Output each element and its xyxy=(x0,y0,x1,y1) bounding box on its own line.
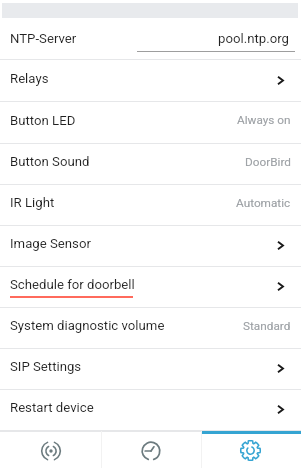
button[interactable]: Live view xyxy=(0,431,101,468)
staticText: NTP-Server xyxy=(10,31,77,46)
button[interactable]: SIP Settings xyxy=(0,349,301,390)
button[interactable]: NTP-Server xyxy=(0,18,301,60)
button[interactable]: Restart device xyxy=(0,390,301,431)
button[interactable]: Relays xyxy=(0,60,301,102)
staticText: Schedule for doorbell xyxy=(10,277,135,292)
button[interactable]: Button LED xyxy=(0,102,301,144)
button[interactable]: History xyxy=(101,431,201,468)
staticText: Standard xyxy=(243,319,291,333)
staticText: DoorBird xyxy=(245,155,291,169)
staticText: pool.ntp.org xyxy=(137,31,289,46)
button[interactable]: Settings xyxy=(201,431,301,468)
staticText: Relays xyxy=(10,71,49,86)
button[interactable]: Schedule for doorbell xyxy=(0,267,301,308)
staticText: Button LED xyxy=(10,113,76,128)
button[interactable]: IR Light xyxy=(0,185,301,226)
button[interactable]: Button Sound xyxy=(0,144,301,185)
staticText: Button Sound xyxy=(10,154,90,169)
button[interactable]: Image Sensor xyxy=(0,226,301,267)
staticText: IR Light xyxy=(10,195,55,210)
staticText: System diagnostic volume xyxy=(10,318,165,333)
staticText: Automatic xyxy=(236,196,291,210)
staticText: SIP Settings xyxy=(10,359,82,374)
staticText: Always on xyxy=(237,113,291,127)
staticText: Image Sensor xyxy=(10,236,91,251)
staticText: Restart device xyxy=(10,400,94,415)
button[interactable]: System diagnostic volume xyxy=(0,308,301,349)
